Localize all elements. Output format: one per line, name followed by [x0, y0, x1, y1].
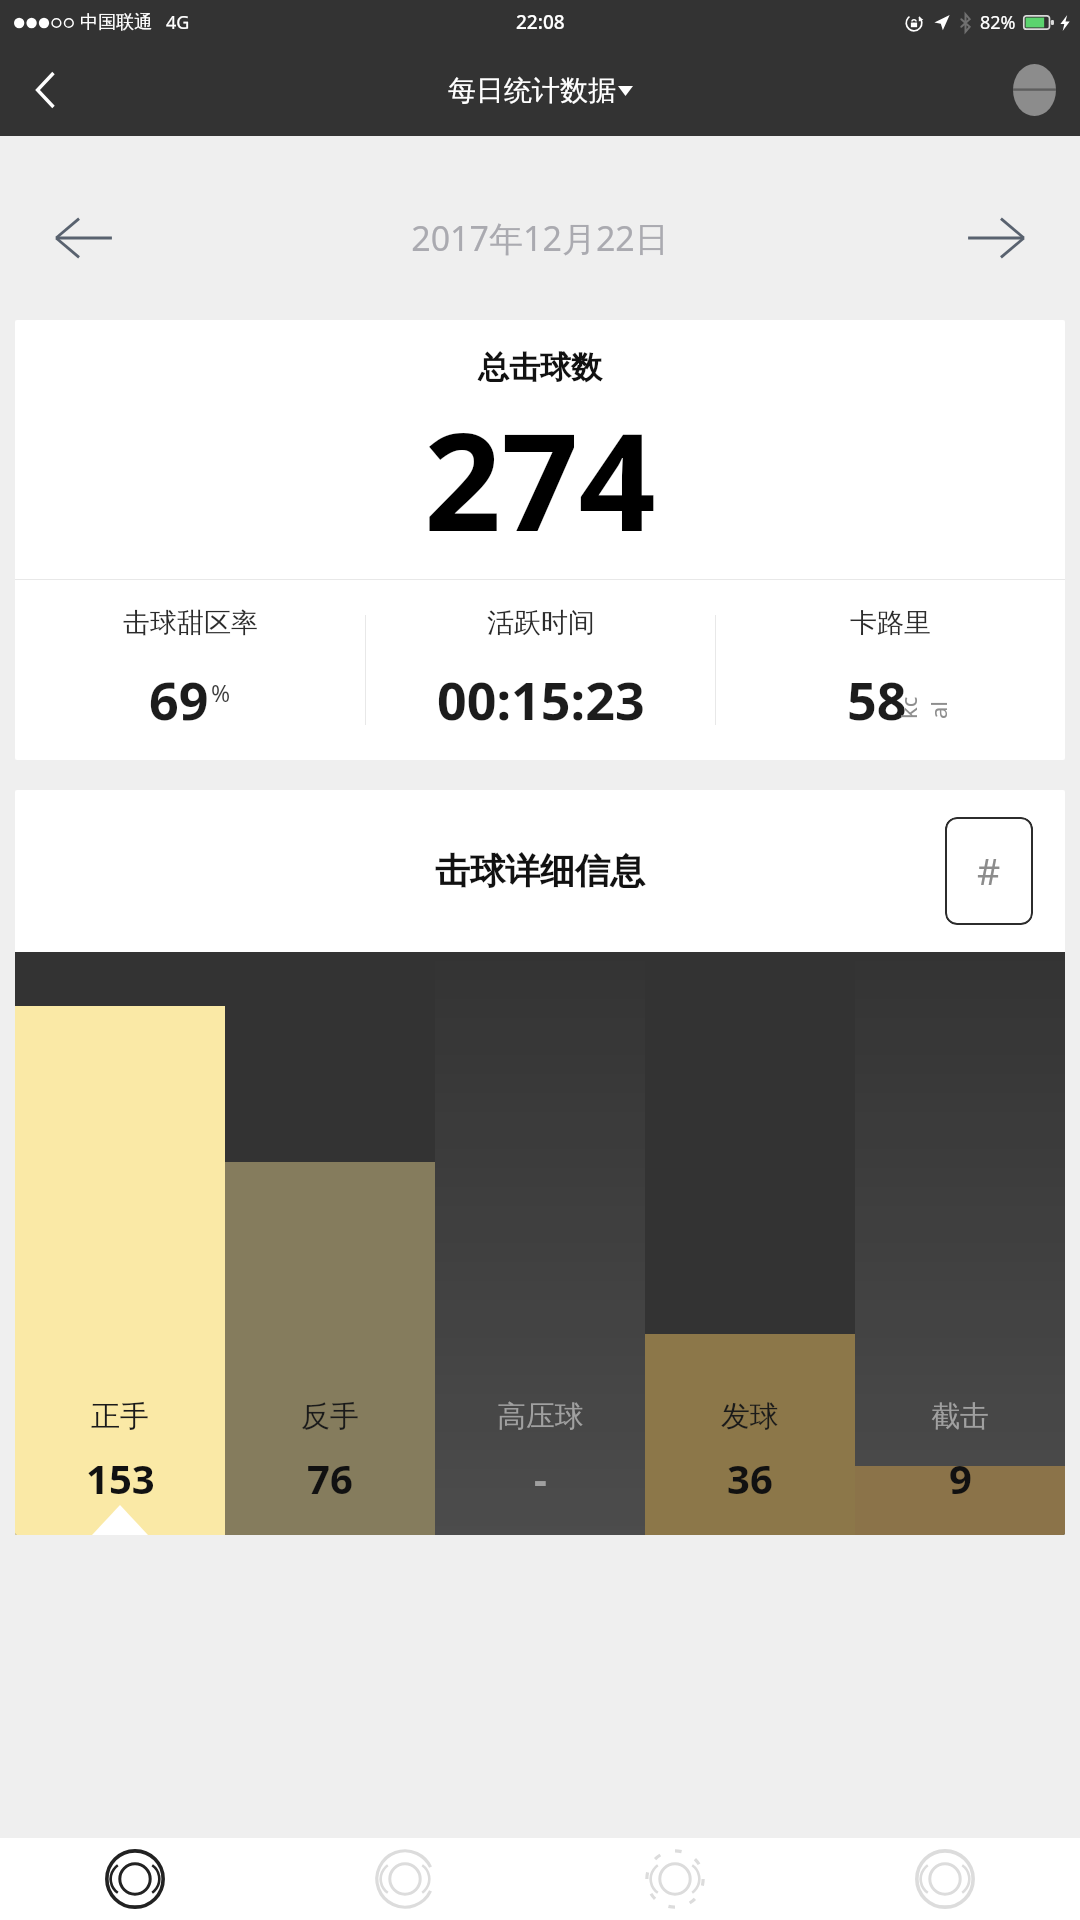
staticText: 击球详细信息 [435, 849, 645, 893]
button[interactable]: History [270, 1838, 540, 1920]
button[interactable]: Back [14, 59, 76, 121]
staticText: - [534, 1451, 547, 1505]
staticText: 274 [424, 387, 656, 571]
staticText: 2017年12月22日 [130, 215, 950, 261]
staticText: 活跃时间 [487, 606, 595, 640]
staticText: 每日统计数据 [448, 73, 616, 108]
staticText: 82% [980, 10, 1016, 35]
staticText: 9 [949, 1451, 972, 1505]
button[interactable]: 发球 [645, 952, 855, 1535]
button[interactable]: Next day [950, 192, 1042, 284]
staticText: 高压球 [497, 1398, 584, 1435]
staticText: 发球 [721, 1398, 779, 1435]
button[interactable]: 反手 [225, 952, 435, 1535]
staticText: % [211, 677, 231, 708]
button[interactable]: 活跃时间 [366, 580, 715, 760]
button[interactable]: 总击球数 [15, 320, 1065, 760]
button[interactable]: Profile [1006, 62, 1062, 118]
staticText: 00:15:23 [437, 664, 645, 735]
staticText: 153 [86, 1451, 155, 1505]
staticText: 36 [727, 1451, 773, 1505]
staticText: kcal [893, 693, 951, 719]
button[interactable]: 正手 [15, 952, 225, 1535]
button[interactable]: 高压球 [435, 952, 645, 1535]
staticText: # [977, 847, 1001, 896]
button[interactable]: 击球甜区率 [15, 580, 365, 760]
button[interactable]: Profile [810, 1838, 1080, 1920]
button[interactable]: 截击 [855, 952, 1065, 1535]
staticText: 69 [149, 664, 209, 735]
button[interactable]: Play [0, 1838, 270, 1920]
button[interactable]: Previous day [38, 192, 130, 284]
button[interactable]: Stats [540, 1838, 810, 1920]
staticText: 反手 [301, 1398, 359, 1435]
button[interactable]: Filter [945, 817, 1033, 925]
staticText: 中国联通 [80, 11, 152, 34]
staticText: 击球甜区率 [123, 606, 258, 640]
staticText: 58 [847, 664, 907, 735]
staticText: 22:08 [516, 9, 565, 35]
staticText: 卡路里 [850, 606, 931, 640]
staticText: 截击 [931, 1398, 989, 1435]
button[interactable]: 卡路里 [716, 580, 1065, 760]
staticText: 正手 [91, 1398, 149, 1435]
staticText: 总击球数 [478, 348, 602, 387]
staticText: 76 [307, 1451, 353, 1505]
staticText: 4G [166, 10, 190, 35]
button[interactable]: 每日统计数据 [448, 73, 633, 108]
